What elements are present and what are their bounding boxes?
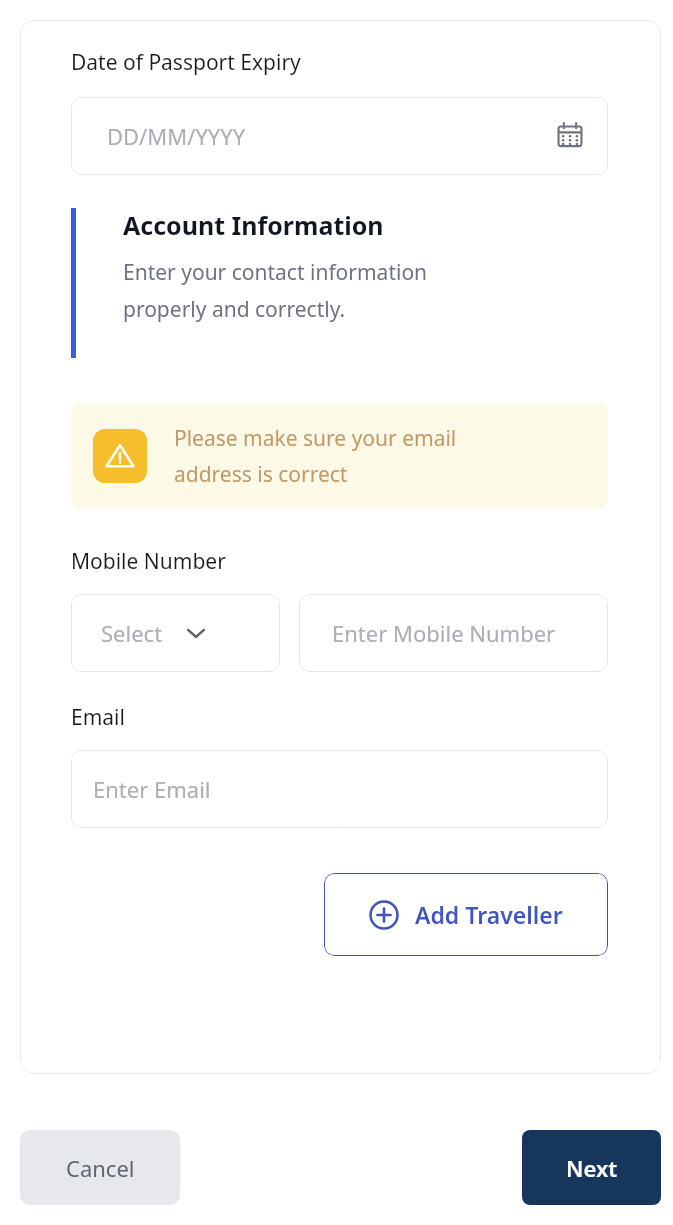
- button[interactable]: Add Traveller: [324, 873, 608, 956]
- staticText: Enter your contact information: [123, 258, 428, 287]
- staticText: Cancel: [66, 1153, 135, 1183]
- button[interactable]: Next: [522, 1130, 661, 1205]
- staticText: Mobile Number: [71, 547, 226, 576]
- staticText: Enter Email: [93, 774, 211, 804]
- staticText: Email: [71, 703, 125, 732]
- staticText: Account Information: [123, 208, 384, 242]
- staticText: address is correct: [174, 460, 348, 489]
- staticText: Next: [566, 1153, 618, 1183]
- button[interactable]: Enter Mobile Number: [299, 594, 608, 672]
- button[interactable]: DD/MM/YYYY: [71, 97, 608, 175]
- staticText: Add Traveller: [415, 899, 563, 930]
- other: Pick date: [556, 122, 584, 150]
- staticText: Enter Mobile Number: [332, 618, 556, 648]
- button[interactable]: Enter Email: [71, 750, 608, 828]
- staticText: Select: [101, 618, 163, 648]
- staticText: properly and correctly.: [123, 295, 346, 324]
- staticText: DD/MM/YYYY: [107, 121, 246, 151]
- staticText: Date of Passport Expiry: [71, 48, 301, 77]
- button[interactable]: Select: [71, 594, 280, 672]
- staticText: Please make sure your email: [174, 424, 457, 453]
- button[interactable]: Cancel: [20, 1130, 180, 1205]
